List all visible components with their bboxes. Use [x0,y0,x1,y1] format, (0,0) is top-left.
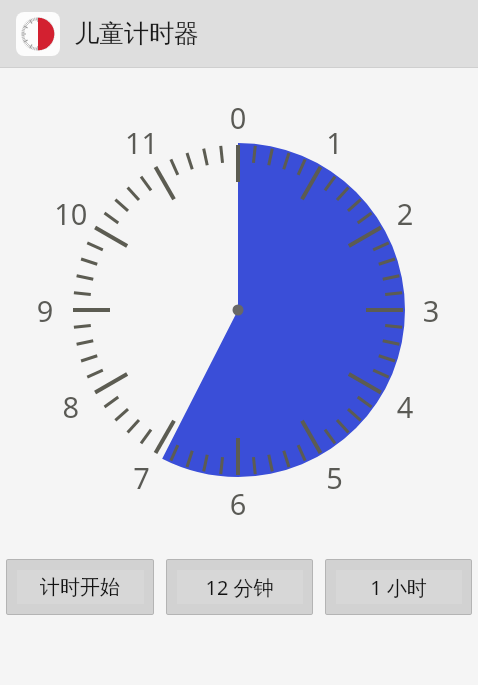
staticText: 1 小时 [370,574,427,601]
staticText: 计时开始 [40,575,120,600]
staticText: 12 分钟 [205,574,274,601]
button[interactable]: 12 分钟 [166,559,313,615]
button[interactable]: 计时开始 [6,559,154,615]
button[interactable]: 1 小时 [325,559,472,615]
staticText: 儿童计时器 [74,18,199,49]
